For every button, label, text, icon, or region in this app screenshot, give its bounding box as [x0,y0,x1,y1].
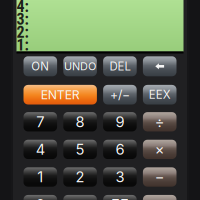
staticText: × [155,140,165,158]
button[interactable]: 9 [103,112,137,131]
button[interactable]: DEL [103,56,137,76]
button[interactable]: − [143,167,176,187]
staticText: 0 [36,196,45,200]
staticText: − [155,168,165,186]
button[interactable]: ÷ [143,112,176,131]
staticText: 7 [36,113,44,131]
button[interactable]: 7 [23,112,57,131]
button[interactable]: 6 [103,140,137,159]
staticText: . [78,196,82,200]
staticText: 2 [76,168,85,186]
button[interactable]: 8 [63,112,97,131]
staticText: EEX [149,88,171,102]
button[interactable]: UNDO [63,56,97,76]
button[interactable]: 5 [63,140,97,159]
button[interactable]: 0 [23,195,57,200]
button[interactable]: 2 [63,167,97,187]
button[interactable]: × [143,140,176,159]
staticText: 3 [115,168,124,186]
button[interactable]: ON [23,56,57,76]
staticText: 2: [16,23,28,42]
staticText: 8 [76,113,85,131]
button[interactable]: +/− [103,85,137,104]
button[interactable]: + [143,195,176,200]
staticText: ENTER [41,87,80,102]
staticText: EE [111,196,129,200]
button[interactable]: EE [103,195,137,200]
staticText: DEL [109,59,130,73]
staticText: 3: [16,10,28,29]
button[interactable]: Backspace [143,56,176,76]
button[interactable]: 4 [23,140,57,159]
staticText: 4: [16,0,28,16]
staticText: UNDO [64,60,96,73]
staticText: 5 [76,140,85,158]
staticText: 6 [115,140,124,158]
button[interactable]: 1 [23,167,57,187]
button[interactable]: ENTER [23,85,97,104]
button[interactable]: . [63,195,97,200]
staticText: + [155,196,165,200]
staticText: 4 [36,140,45,158]
button[interactable]: EEX [143,85,176,104]
staticText: ON [31,59,49,73]
staticText: 9 [115,113,124,131]
staticText: 1: [16,36,28,54]
staticText: ÷ [155,113,165,131]
staticText: 1 [37,168,43,186]
button[interactable]: 3 [103,167,137,187]
staticText: +/− [110,87,130,102]
